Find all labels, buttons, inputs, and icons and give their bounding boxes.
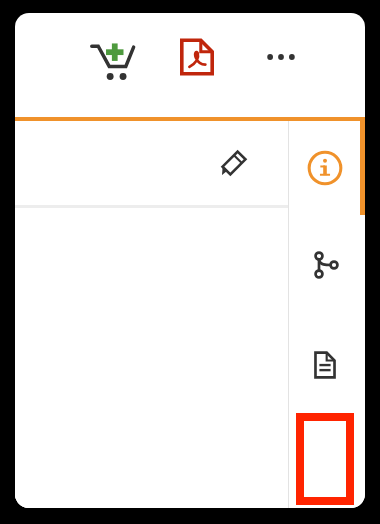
button[interactable]: Info — [289, 121, 365, 215]
button[interactable]: More options — [257, 33, 305, 81]
button[interactable]: Document — [289, 315, 365, 415]
button[interactable]: Export PDF — [173, 33, 221, 81]
button[interactable]: Share — [289, 215, 365, 315]
button[interactable]: Edit — [212, 141, 256, 185]
button[interactable]: Add to cart — [85, 33, 139, 87]
button[interactable]: Attachments — [289, 415, 365, 508]
